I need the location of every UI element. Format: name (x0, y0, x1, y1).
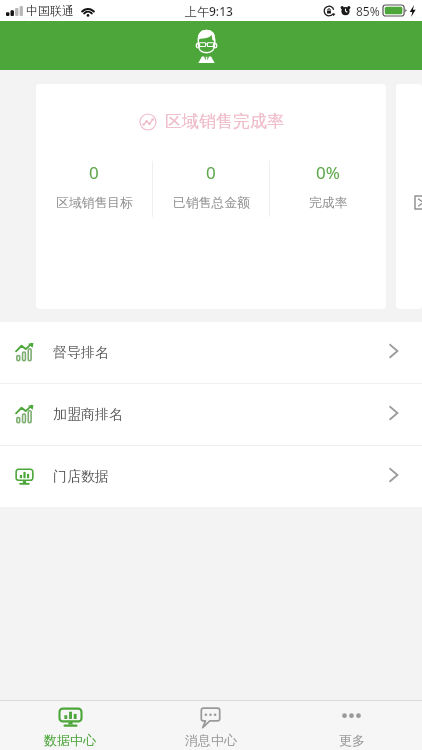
staticText: 上午9:13 (185, 3, 233, 19)
button[interactable]: 督导排名 (0, 322, 422, 383)
staticText: 0 (206, 161, 216, 184)
staticText: 0 (89, 161, 99, 184)
button[interactable]: 更多 (281, 701, 422, 750)
button[interactable]: Profile (189, 24, 233, 68)
staticText: 门店数据 (53, 468, 109, 486)
staticText: 区域销售目标 (56, 195, 133, 211)
staticText: 区域销售完成率 (165, 111, 284, 132)
staticText: 加盟商排名 (53, 406, 123, 424)
button[interactable]: 区域销售完成率 (36, 84, 386, 309)
staticText: 督导排名 (53, 344, 109, 362)
staticText: 消息中心 (185, 732, 237, 748)
button[interactable]: 消息中心 (140, 701, 281, 750)
button[interactable] (396, 84, 422, 309)
staticText: 完成率 (309, 195, 348, 211)
staticText: 0% (316, 161, 340, 184)
button[interactable]: 加盟商排名 (0, 384, 422, 445)
staticText: 数据中心 (44, 732, 96, 748)
staticText: 中国联通 (26, 3, 74, 18)
staticText: 85% (356, 3, 380, 19)
button[interactable]: 门店数据 (0, 446, 422, 507)
button[interactable]: 数据中心 (0, 701, 140, 750)
staticText: 已销售总金额 (173, 195, 250, 211)
staticText: 更多 (339, 732, 365, 748)
